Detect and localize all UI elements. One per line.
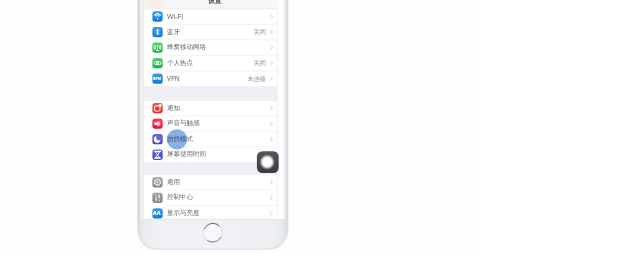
button[interactable]	[143, 190, 277, 206]
button[interactable]	[143, 116, 277, 132]
staticText: VPN	[167, 74, 180, 83]
staticText: 蓝牙	[167, 28, 180, 36]
staticText: 关闭	[235, 59, 266, 67]
staticText: 屏幕使用时间	[167, 150, 206, 158]
staticText: 显示与亮度	[167, 209, 200, 217]
button[interactable]	[143, 24, 277, 40]
staticText: 控制中心	[167, 193, 193, 201]
button[interactable]	[143, 55, 277, 71]
staticText: 声音与触感	[167, 119, 200, 127]
staticText: VPN	[153, 76, 161, 81]
button[interactable]	[143, 206, 277, 222]
button[interactable]	[143, 9, 277, 25]
button[interactable]	[143, 175, 277, 191]
staticText: 未连接	[235, 75, 266, 83]
staticText: 通用	[167, 178, 180, 186]
button[interactable]	[143, 40, 277, 56]
button[interactable]	[143, 71, 277, 87]
staticText: 设置	[208, 0, 222, 5]
button[interactable]	[143, 131, 277, 147]
staticText: AA	[153, 209, 161, 216]
staticText: 勿扰模式	[167, 135, 193, 143]
staticText: 通知	[167, 104, 180, 112]
staticText: 关闭	[235, 28, 266, 36]
staticText: 个人热点	[167, 59, 193, 67]
button[interactable]	[143, 147, 277, 163]
staticText: 蜂窝移动网络	[167, 43, 206, 51]
staticText: Wi-Fi	[167, 12, 184, 22]
button[interactable]	[143, 100, 277, 116]
